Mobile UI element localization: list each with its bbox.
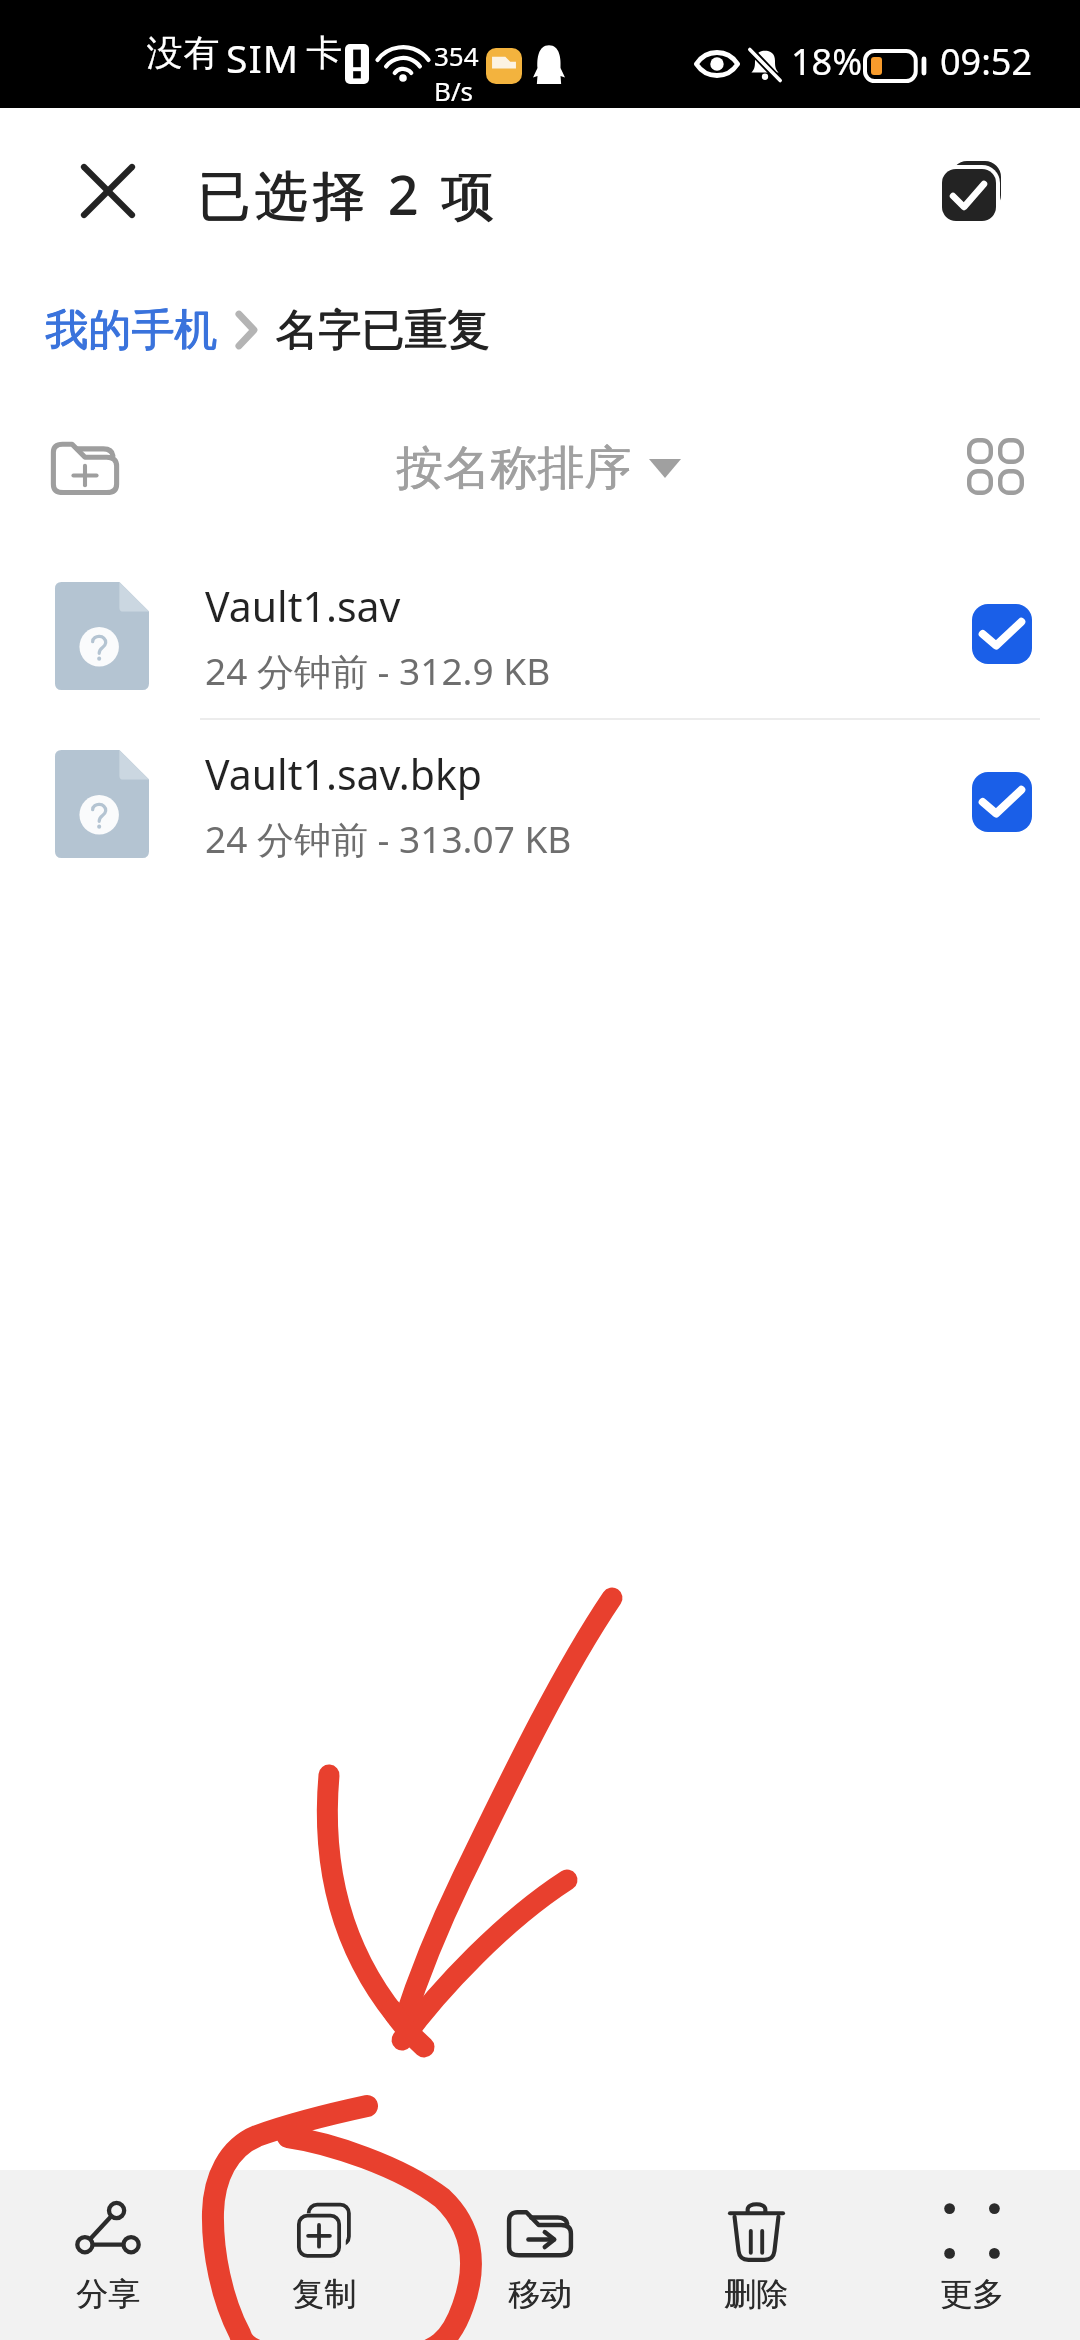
- staticText: 24 分钟前 - 313.07 KB: [205, 813, 572, 864]
- button[interactable]: 移动: [432, 2170, 648, 2340]
- staticText: 24 分钟前 - 312.9 KB: [205, 645, 551, 696]
- staticText: 已选择 2 项: [198, 157, 500, 229]
- staticText: 09:52: [940, 37, 1033, 86]
- staticText: 复制: [292, 2274, 356, 2314]
- staticText: 复制: [293, 2274, 357, 2314]
- staticText: 按名称排序: [397, 439, 632, 498]
- button[interactable]: 复制: [216, 2170, 432, 2340]
- staticText: B/s: [434, 73, 474, 108]
- button[interactable]: 已选中: [972, 772, 1032, 832]
- staticText: 我的手机: [45, 304, 217, 358]
- staticText: 更多: [940, 2274, 1004, 2314]
- staticText: 没有: [146, 30, 220, 75]
- button[interactable]: 删除: [648, 2170, 864, 2340]
- staticText: Vault1.sav.bkp: [205, 746, 483, 802]
- staticText: 我的手机: [46, 303, 218, 357]
- button[interactable]: Vault1.sav: [0, 582, 1080, 750]
- staticText: 我的手机: [45, 303, 217, 357]
- staticText: 卡: [306, 30, 342, 75]
- button[interactable]: 按名称排序: [396, 428, 681, 508]
- staticText: 删除: [725, 2274, 789, 2314]
- staticText: 18%: [791, 37, 863, 86]
- staticText: 名字已重复: [275, 304, 490, 358]
- staticText: 354: [434, 38, 479, 73]
- staticText: 名字已重复: [276, 303, 491, 357]
- button[interactable]: Vault1.sav.bkp: [0, 750, 1080, 918]
- button[interactable]: 我的手机: [45, 303, 217, 357]
- staticText: 分享: [76, 2274, 140, 2314]
- staticText: 按名称排序: [396, 439, 631, 498]
- button[interactable]: 分享: [0, 2170, 216, 2340]
- staticText: 移动: [508, 2274, 572, 2314]
- button[interactable]: 退出选择: [60, 143, 156, 239]
- staticText: 已选择 2 项: [197, 157, 499, 229]
- button[interactable]: 更多: [864, 2170, 1080, 2340]
- staticText: 分享: [77, 2274, 141, 2314]
- staticText: 名字已重复: [275, 303, 490, 357]
- staticText: 已选择 2 项: [197, 158, 499, 230]
- staticText: 更多: [941, 2274, 1005, 2314]
- button[interactable]: 新建文件夹: [40, 423, 130, 513]
- staticText: 移动: [509, 2274, 573, 2314]
- button[interactable]: 已选择 2 项: [197, 157, 499, 229]
- button[interactable]: 全选: [924, 143, 1020, 239]
- staticText: 删除: [724, 2274, 788, 2314]
- staticText: SIM: [226, 31, 300, 84]
- staticText: Vault1.sav: [205, 578, 401, 634]
- button[interactable]: 已选中: [972, 604, 1032, 664]
- button[interactable]: 切换网格视图: [951, 422, 1041, 512]
